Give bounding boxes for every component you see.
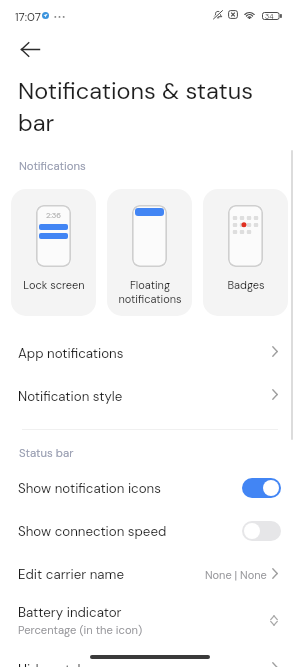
staticText: Battery indicator [18,604,122,621]
other: Change [270,615,278,626]
staticText: Edit carrier name [18,566,124,583]
button[interactable]: 2:36 [11,189,96,316]
staticText: Status bar [19,446,74,461]
button[interactable]: Floating notifications [107,189,192,316]
button[interactable]: Notification style [0,375,300,418]
button[interactable]: Show connection speed [0,510,300,553]
staticText: None | None [205,568,267,582]
other: Open [272,389,278,400]
other: Open [272,568,278,579]
staticText: 2:36 [46,211,61,221]
staticText: 34 [265,12,274,20]
staticText: 17:07 [15,10,41,25]
staticText: Show connection speed [18,523,167,540]
staticText: App notifications [18,345,124,362]
staticText: Lock screen [23,278,85,292]
button[interactable]: Show notification icons [0,467,300,510]
staticText: Show notification icons [18,480,161,497]
button[interactable]: Hide notch [0,661,300,667]
staticText: Hide notch [18,661,86,667]
button[interactable]: Battery indicator [0,599,300,642]
other: Open [272,662,278,667]
other: Open [272,346,278,357]
staticText: Notification style [18,388,123,405]
staticText: Percentage (in the icon) [18,623,143,638]
button[interactable]: Edit carrier name [0,553,300,596]
staticText: Floating notifications [118,278,182,306]
button[interactable]: App notifications [0,332,300,375]
button[interactable]: Badges [203,189,288,316]
staticText: Notifications [19,159,86,174]
staticText: Badges [227,278,265,292]
button[interactable]: Back [12,31,48,67]
staticText: Notifications & status bar [18,76,266,139]
